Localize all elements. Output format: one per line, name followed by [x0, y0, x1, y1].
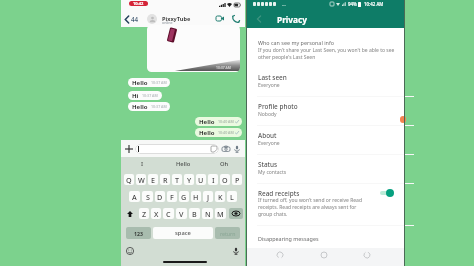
button[interactable]: W	[136, 174, 146, 185]
staticText: R	[163, 175, 168, 185]
button[interactable]: Status	[247, 156, 404, 180]
staticText: About	[258, 131, 277, 140]
staticText: I	[141, 160, 144, 168]
button[interactable]: Read receipts	[247, 185, 404, 222]
button[interactable]: I	[121, 157, 163, 170]
button[interactable]: About	[247, 127, 404, 151]
button[interactable]: Z	[139, 208, 149, 219]
staticText: Hello	[132, 103, 148, 111]
button[interactable]: Back	[361, 249, 373, 261]
button[interactable]: Home	[318, 249, 330, 261]
button[interactable]: 10:37 AM	[147, 25, 240, 72]
button[interactable]: Backspace	[229, 208, 243, 219]
staticText: X	[154, 209, 159, 219]
button[interactable]: Hello	[195, 117, 242, 126]
staticText: Hello	[176, 160, 191, 168]
staticText: Last seen	[258, 73, 287, 82]
button[interactable]: Profile photo	[247, 98, 404, 122]
button[interactable]: M	[215, 208, 226, 219]
staticText: C	[166, 209, 171, 219]
staticText: online	[162, 20, 173, 25]
button[interactable]: N	[202, 208, 213, 219]
button[interactable]: R	[160, 174, 170, 185]
staticText: 10:42 AM	[364, 1, 384, 7]
button[interactable]: Voice call	[230, 13, 241, 24]
staticText: ...	[282, 1, 286, 7]
staticText: Privacy	[277, 14, 308, 25]
button[interactable]: 123	[126, 227, 151, 239]
button[interactable]: Hello	[128, 102, 170, 111]
staticText: Profile photo	[258, 102, 298, 111]
staticText: Hello	[199, 129, 215, 137]
staticText: If turned off, you won't send or receive…	[258, 197, 364, 218]
button[interactable]: D	[155, 191, 165, 202]
button[interactable]: Back	[253, 13, 265, 25]
staticText: Who can see my personal info	[258, 39, 335, 46]
button[interactable]: O	[220, 174, 230, 185]
button[interactable]: H	[191, 191, 201, 202]
button[interactable]: Attach	[124, 144, 134, 154]
button[interactable]: B	[189, 208, 200, 219]
button[interactable]: Hello	[128, 78, 170, 87]
button[interactable]: I	[208, 174, 218, 185]
staticText: V	[179, 209, 184, 219]
button[interactable]: Oh	[204, 157, 245, 170]
button[interactable]: Video call	[214, 13, 225, 24]
staticText: If you don't share your Last Seen, you w…	[258, 47, 401, 61]
button[interactable]: V	[176, 208, 187, 219]
staticText: Everyone	[258, 140, 280, 147]
staticText: My contacts	[258, 169, 287, 176]
staticText: I	[212, 175, 215, 185]
button[interactable]: A	[129, 191, 140, 202]
staticText: L	[230, 192, 234, 202]
staticText: 10:42	[133, 1, 144, 6]
staticText: Z	[142, 209, 147, 219]
button[interactable]: K	[215, 191, 225, 202]
button[interactable]: Q	[124, 174, 134, 185]
staticText: Hello	[199, 118, 215, 126]
button[interactable]: S	[142, 191, 153, 202]
staticText: Hi	[132, 92, 139, 100]
staticText: O	[222, 175, 228, 185]
button[interactable]: L	[227, 191, 237, 202]
staticText: Everyone	[258, 82, 280, 89]
staticText: P	[235, 175, 240, 185]
button[interactable]: E	[148, 174, 158, 185]
staticText: K	[218, 192, 223, 202]
button[interactable]: Hi	[128, 91, 162, 100]
button[interactable]: Y	[184, 174, 194, 185]
button[interactable]: U	[196, 174, 206, 185]
button[interactable]: Voice message	[232, 144, 242, 154]
button[interactable]	[135, 144, 219, 154]
button[interactable]: return	[215, 227, 240, 239]
button[interactable]: Hello	[195, 128, 242, 137]
staticText: Nobody	[258, 111, 277, 118]
staticText: Oh	[220, 160, 229, 168]
staticText: N	[205, 209, 211, 219]
staticText: 10:40 AM	[218, 119, 234, 124]
staticText: Y	[187, 175, 192, 185]
button[interactable]: C	[163, 208, 174, 219]
button[interactable]: G	[179, 191, 189, 202]
button[interactable]: F	[167, 191, 177, 202]
button[interactable]: J	[203, 191, 213, 202]
staticText: PixxyTube	[162, 15, 191, 23]
staticText: 10:40 AM	[218, 130, 234, 135]
staticText: Disappearing messages	[258, 235, 319, 242]
button[interactable]: 44	[123, 14, 141, 24]
staticText: J	[207, 192, 210, 202]
button[interactable]: P	[232, 174, 242, 185]
button[interactable]: T	[172, 174, 182, 185]
button[interactable]: Last seen	[247, 69, 404, 93]
button[interactable]: Shift	[123, 208, 136, 219]
staticText: 123	[134, 230, 143, 237]
button[interactable]: space	[153, 227, 213, 239]
staticText: Status	[258, 160, 278, 169]
button[interactable]: Camera	[221, 144, 231, 154]
button[interactable]: Hello	[163, 157, 204, 170]
button[interactable]: Emoji	[125, 246, 135, 256]
button[interactable]: Dictate	[231, 246, 241, 256]
button[interactable]: Recents	[274, 249, 286, 261]
staticText: E	[151, 175, 156, 185]
button[interactable]: X	[151, 208, 161, 219]
